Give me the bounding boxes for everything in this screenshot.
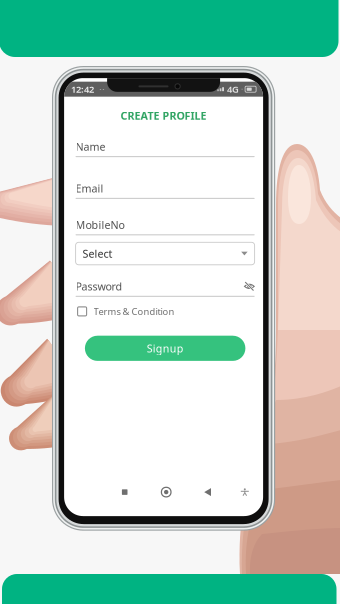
button[interactable]: Recent apps bbox=[114, 483, 136, 501]
button[interactable]: Accessibility bbox=[234, 483, 256, 501]
staticText: Name bbox=[76, 139, 106, 154]
button[interactable]: Signup bbox=[85, 336, 245, 361]
staticText: Signup bbox=[147, 341, 184, 355]
staticText: MobileNo bbox=[76, 218, 125, 232]
button[interactable]: MobileNo bbox=[76, 217, 255, 235]
button[interactable]: Select bbox=[76, 242, 255, 265]
staticText: Terms & Condition bbox=[94, 305, 175, 318]
staticText: Select bbox=[83, 246, 113, 261]
staticText: 12:42 bbox=[71, 83, 94, 95]
button[interactable]: Terms & Condition bbox=[78, 305, 257, 318]
staticText: Email bbox=[76, 181, 104, 195]
button[interactable]: Email bbox=[76, 181, 255, 199]
button[interactable]: Home bbox=[155, 483, 177, 501]
staticText: ·· bbox=[99, 82, 105, 96]
button[interactable]: Password bbox=[76, 279, 255, 297]
staticText: CREATE PROFILE bbox=[121, 108, 207, 123]
staticText: Password bbox=[76, 279, 123, 293]
button[interactable]: Name bbox=[76, 139, 255, 157]
button[interactable]: Back bbox=[197, 483, 219, 501]
staticText: 4G bbox=[227, 83, 239, 95]
